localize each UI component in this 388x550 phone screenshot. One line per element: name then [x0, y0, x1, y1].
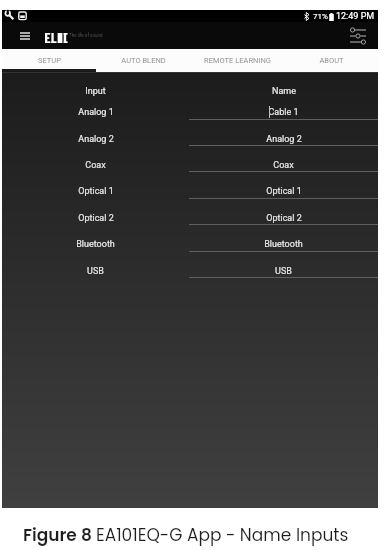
staticText: ABOUT [319, 56, 344, 65]
staticText: Analog 2 [266, 134, 302, 145]
button[interactable] [189, 119, 378, 145]
button[interactable] [189, 92, 378, 118]
staticText: Bluetooth [264, 239, 303, 250]
staticText: Optical 1 [266, 186, 302, 197]
button[interactable] [2, 198, 189, 224]
staticText: Name [272, 86, 296, 97]
button[interactable]: AUTO BLEND [96, 49, 190, 72]
staticText: USB [87, 266, 104, 277]
button[interactable]: REMOTE LEARNING [190, 49, 284, 72]
button[interactable]: Open navigation menu [13, 24, 37, 48]
button[interactable] [189, 224, 378, 250]
staticText: Optical 2 [266, 213, 302, 224]
staticText: Input [85, 86, 106, 97]
staticText: Cable 1 [268, 107, 299, 118]
staticText: Figure 8 [23, 523, 96, 547]
button[interactable] [2, 92, 189, 118]
button[interactable] [2, 171, 189, 197]
staticText: SETUP [38, 56, 61, 65]
staticText: Optical 2 [78, 213, 114, 224]
staticText: 71% [313, 12, 328, 21]
staticText: Coax [85, 160, 106, 171]
button[interactable] [189, 251, 378, 277]
staticText: Optical 1 [78, 186, 114, 197]
button[interactable] [189, 171, 378, 197]
staticText: AUTO BLEND [121, 56, 166, 65]
staticText: The life of sound [69, 33, 103, 38]
button[interactable] [2, 251, 189, 277]
button[interactable] [189, 145, 378, 171]
button[interactable] [2, 145, 189, 171]
staticText: REMOTE LEARNING [204, 56, 271, 65]
staticText: USB [275, 266, 292, 277]
button[interactable] [189, 198, 378, 224]
button[interactable] [2, 119, 189, 145]
staticText: 12:49 PM [336, 11, 375, 22]
button[interactable]: ABOUT [284, 49, 378, 72]
button[interactable]: SETUP [2, 49, 96, 72]
staticText: Coax [273, 160, 294, 171]
button[interactable]: Equalizer settings [347, 25, 369, 47]
staticText: Bluetooth [76, 239, 115, 250]
button[interactable] [2, 224, 189, 250]
staticText: Analog 2 [78, 134, 114, 145]
staticText: EA101EQ-G App - Name Inputs [96, 523, 349, 547]
staticText: Analog 1 [78, 107, 114, 118]
